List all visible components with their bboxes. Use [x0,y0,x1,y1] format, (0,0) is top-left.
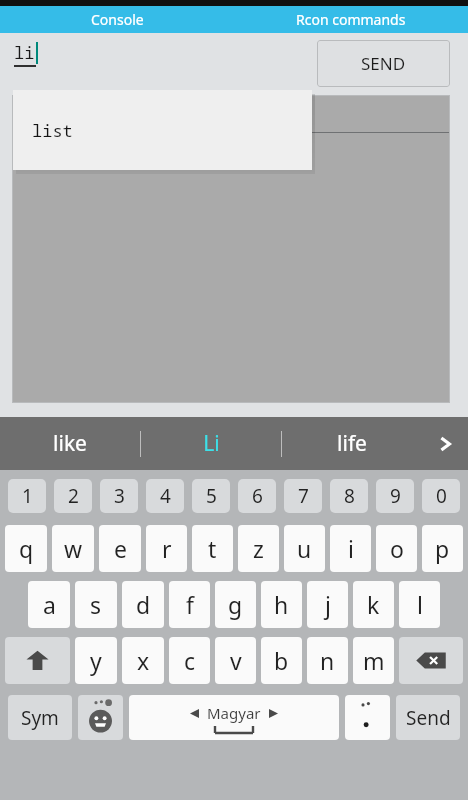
staticText: q [19,533,34,564]
staticText: 8 [344,483,355,509]
staticText: SEND [361,52,406,75]
button[interactable]: m [353,637,394,684]
button[interactable]: c [169,637,210,684]
staticText: Sym [21,705,59,731]
button[interactable]: Li [141,417,281,470]
staticText: 3 [114,483,125,509]
staticText: c [184,645,196,676]
staticText: 6 [252,483,263,509]
staticText: 4 [160,483,171,509]
button[interactable]: Emoji [78,695,123,740]
button[interactable]: 2 [54,479,92,513]
button[interactable]: life [282,417,422,470]
staticText: Magyar [207,703,261,723]
button[interactable]: 3 [100,479,138,513]
staticText: m [363,645,385,676]
button[interactable]: Backspace [399,637,463,684]
button[interactable]: u [284,525,325,572]
button[interactable]: 6 [238,479,276,513]
button[interactable]: n [307,637,348,684]
staticText: Li [203,429,220,458]
button[interactable]: k [353,581,394,628]
staticText: s [90,589,102,620]
button[interactable]: y [75,637,117,684]
staticText: i [348,533,354,564]
button[interactable]: t [192,525,233,572]
button[interactable]: 8 [330,479,368,513]
staticText: b [274,645,289,676]
staticText: d [136,589,151,620]
button[interactable]: 1 [8,479,46,513]
button[interactable]: l [399,581,440,628]
staticText: 5 [206,483,217,509]
button[interactable]: z [238,525,279,572]
button[interactable]: h [261,581,302,628]
staticText: v [230,645,242,676]
staticText: life [337,429,367,458]
button[interactable]: a [28,581,70,628]
staticText: k [367,589,380,620]
staticText: 0 [436,483,447,509]
button[interactable]: Send [396,695,460,740]
button[interactable]: s [75,581,117,628]
button[interactable]: d [122,581,164,628]
staticText: l [417,589,423,620]
button[interactable]: e [99,525,141,572]
staticText: Console [91,10,144,29]
button[interactable]: 7 [284,479,322,513]
button[interactable]: j [307,581,348,628]
button[interactable]: f [169,581,210,628]
staticText: j [325,589,331,620]
staticText: li [14,41,35,64]
staticText: z [253,533,264,564]
staticText: g [228,589,243,620]
staticText: 1 [22,483,33,509]
button[interactable]: Period [345,695,390,740]
button[interactable]: More suggestions [422,417,468,470]
button[interactable]: Shift [5,637,70,684]
staticText: 9 [390,483,401,509]
button[interactable]: 5 [192,479,230,513]
staticText: 2 [68,483,79,509]
button[interactable]: 9 [376,479,414,513]
button[interactable]: li [14,41,300,94]
button[interactable]: Sym [8,695,72,740]
button[interactable]: w [52,525,94,572]
staticText: o [390,533,404,564]
button[interactable]: Console [0,6,234,33]
staticText: list [32,119,73,142]
button[interactable]: i [330,525,371,572]
button[interactable]: 4 [146,479,184,513]
button[interactable]: like [0,417,140,470]
staticText: e [114,533,127,564]
staticText: Rcon commands [296,10,406,29]
button[interactable]: v [215,637,256,684]
staticText: w [64,533,83,564]
button[interactable]: Rcon commands [234,6,468,33]
button[interactable]: list [13,90,312,170]
button[interactable]: q [5,525,47,572]
staticText: Send [406,705,451,731]
staticText: n [320,645,335,676]
button[interactable]: r [146,525,187,572]
staticText: h [274,589,289,620]
staticText: f [186,589,194,620]
button[interactable]: b [261,637,302,684]
button[interactable]: o [376,525,417,572]
staticText: like [53,429,87,458]
button[interactable]: p [422,525,463,572]
staticText: p [435,533,450,564]
staticText: x [137,645,150,676]
staticText: t [208,533,217,564]
staticText: a [43,589,56,620]
staticText: y [90,645,102,676]
button[interactable]: 0 [422,479,460,513]
button[interactable]: g [215,581,256,628]
staticText: r [162,533,172,564]
button[interactable]: x [122,637,164,684]
button[interactable]: Space, Magyar [129,695,339,740]
button[interactable]: SEND [317,40,450,87]
staticText: u [297,533,312,564]
staticText: 7 [298,483,309,509]
